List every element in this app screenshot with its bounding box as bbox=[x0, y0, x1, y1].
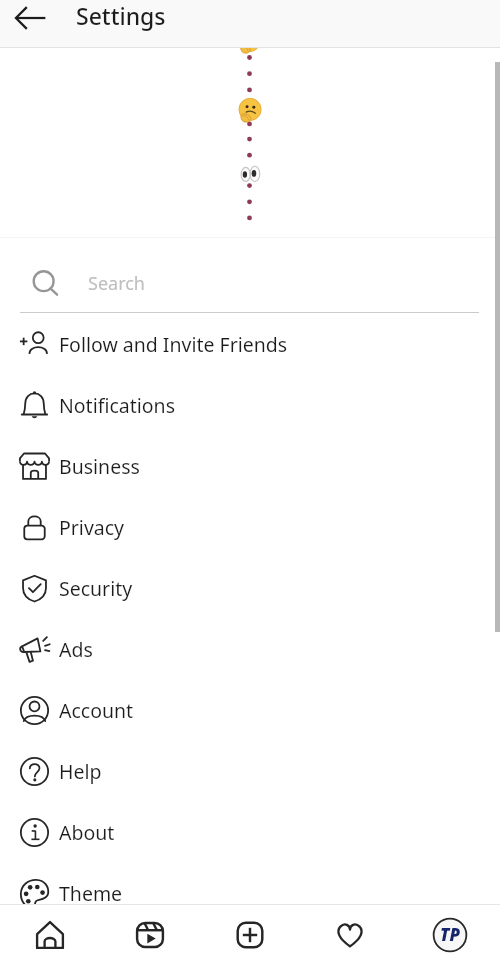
staticText: Privacy bbox=[59, 514, 125, 541]
staticText: Account bbox=[59, 697, 134, 724]
staticText: TP bbox=[440, 923, 460, 946]
button[interactable]: Privacy bbox=[0, 497, 500, 558]
staticText: Search bbox=[88, 271, 145, 296]
staticText: Follow and Invite Friends bbox=[59, 331, 288, 358]
button[interactable]: Account bbox=[0, 680, 500, 741]
staticText: Security bbox=[59, 575, 133, 602]
staticText: Ads bbox=[59, 636, 93, 663]
button[interactable]: Create bbox=[227, 912, 273, 958]
staticText: About bbox=[59, 819, 115, 846]
button[interactable]: Follow and Invite Friends bbox=[0, 314, 500, 375]
staticText: Theme bbox=[59, 880, 123, 907]
button[interactable]: Security bbox=[0, 558, 500, 619]
button[interactable]: Theme bbox=[0, 863, 500, 924]
button[interactable]: Reels bbox=[127, 912, 173, 958]
staticText: Notifications bbox=[59, 392, 175, 419]
button[interactable]: Activity bbox=[327, 912, 373, 958]
button[interactable]: Back bbox=[6, 0, 54, 41]
button[interactable]: Notifications bbox=[0, 375, 500, 436]
button[interactable]: Ads bbox=[0, 619, 500, 680]
button[interactable]: Business bbox=[0, 436, 500, 497]
staticText: Business bbox=[59, 453, 140, 480]
button[interactable]: Profile bbox=[427, 912, 473, 958]
staticText: Settings bbox=[76, 0, 166, 31]
staticText: Help bbox=[59, 758, 102, 785]
button[interactable]: Help bbox=[0, 741, 500, 802]
button[interactable]: Search bbox=[0, 238, 500, 308]
button[interactable]: About bbox=[0, 802, 500, 863]
button[interactable]: Home bbox=[27, 912, 73, 958]
